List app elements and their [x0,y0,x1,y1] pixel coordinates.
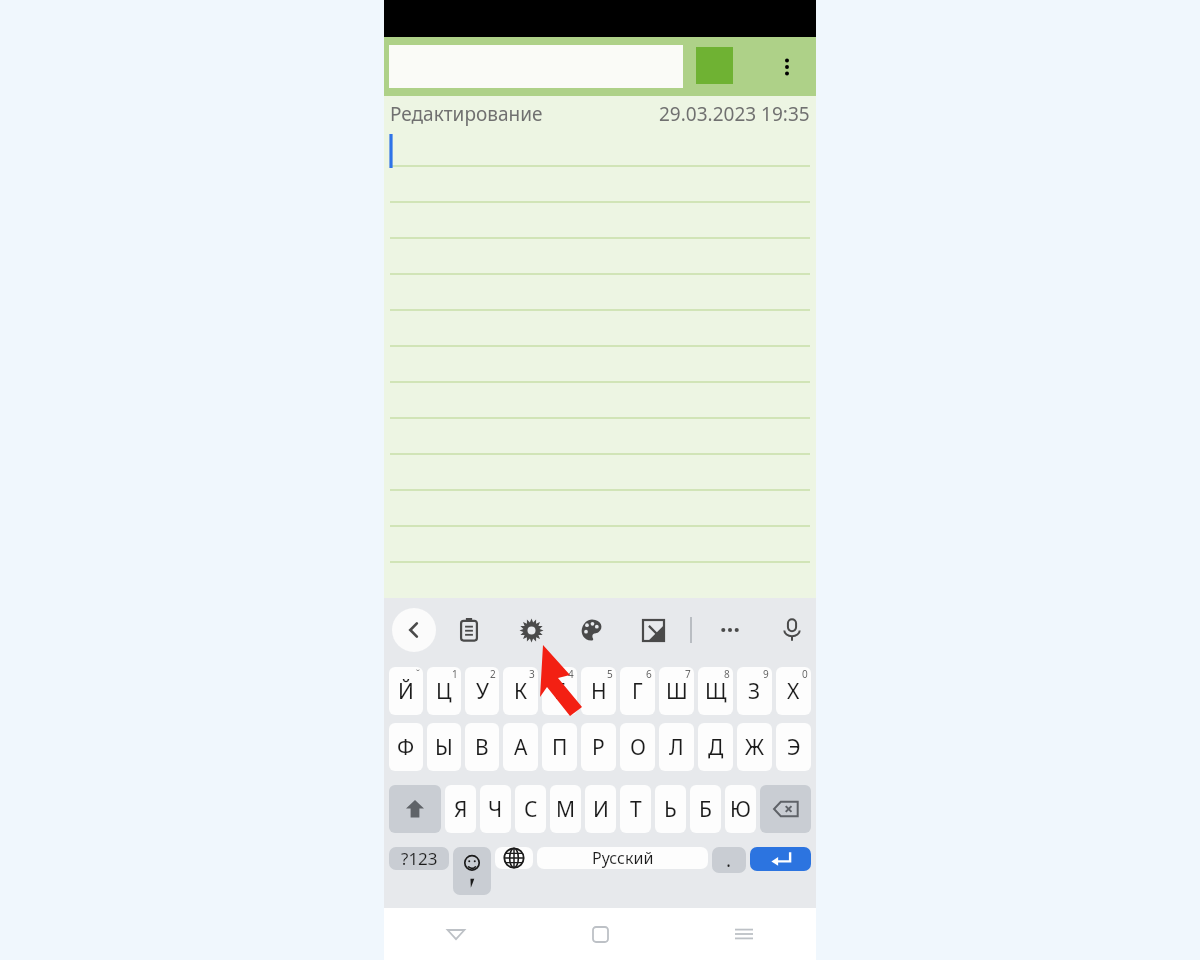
button[interactable]: Темы [570,608,614,652]
staticText: Т [630,795,642,824]
staticText: К [514,677,528,706]
staticText: Русский [592,847,654,869]
staticText: О [630,733,646,762]
staticText: 5 [607,667,613,681]
staticText: 8 [724,667,730,681]
staticText: Р [592,733,605,762]
button[interactable]: Х [776,667,811,715]
staticText: А [514,733,528,762]
button[interactable]: Й [389,667,423,715]
staticText: Ь [664,795,677,824]
button[interactable]: Ь [655,785,686,833]
button[interactable]: Настройки [509,608,553,652]
staticText: 2 [490,667,496,681]
staticText: . [726,847,732,873]
staticText: Э [787,733,801,762]
staticText: Ш [666,677,688,706]
staticText: 4 [568,667,574,681]
button[interactable]: Размер клавиатуры [631,608,675,652]
button[interactable]: Русский [537,847,708,869]
button[interactable]: Ввод [750,847,811,871]
button[interactable]: Д [698,723,733,771]
staticText: Г [632,677,643,706]
button[interactable]: П [542,723,577,771]
button[interactable]: Эмодзи и запятая [453,847,491,895]
button[interactable]: Э [776,723,811,771]
staticText: Х [787,677,800,706]
staticText: И [593,795,609,824]
staticText: 3 [529,667,535,681]
staticText: Л [669,733,684,762]
staticText: Ц [436,677,452,706]
staticText: П [552,733,568,762]
staticText: 1 [452,667,458,681]
staticText: Я [454,795,468,824]
button[interactable]: Б [690,785,721,833]
button[interactable]: Щ [698,667,733,715]
staticText: Ж [745,733,765,762]
button[interactable]: Голосовой ввод [770,608,814,652]
staticText: В [475,733,489,762]
button[interactable]: С [515,785,546,833]
button[interactable]: Ю [725,785,756,833]
button[interactable]: Назад [392,608,436,652]
button[interactable]: Ч [480,785,511,833]
staticText: С [524,795,538,824]
button[interactable]: О [620,723,655,771]
button[interactable]: Н [581,667,616,715]
button[interactable]: ?123 [389,847,449,870]
staticText: У [476,677,489,706]
staticText: ?123 [401,847,438,870]
button[interactable]: А [503,723,538,771]
staticText: ˘ [416,667,420,681]
staticText: Е [554,677,566,706]
button[interactable]: Ж [737,723,772,771]
staticText: Д [708,733,724,762]
button[interactable]: . [712,847,746,873]
button[interactable]: Л [659,723,694,771]
button[interactable]: Ещё [708,608,752,652]
button[interactable]: Г [620,667,655,715]
button[interactable]: Главный экран [528,908,672,960]
staticText: Ф [397,733,415,762]
staticText: Б [699,795,712,824]
button[interactable]: Назад [384,908,528,960]
staticText: Н [591,677,607,706]
button[interactable]: З [737,667,772,715]
button[interactable]: Я [445,785,476,833]
button[interactable]: Shift [389,785,441,833]
button[interactable]: Е [542,667,577,715]
staticText: 9 [763,667,769,681]
button[interactable]: Ф [389,723,423,771]
button[interactable]: Буфер обмена [447,608,491,652]
button[interactable]: У [465,667,499,715]
button[interactable]: Меню [758,37,816,96]
staticText: 7 [685,667,691,681]
staticText: З [748,677,761,706]
staticText: Щ [705,677,727,706]
button[interactable]: Сменить язык [495,847,533,869]
staticText: 29.03.2023 19:35 [659,101,810,127]
button[interactable]: М [550,785,581,833]
button[interactable]: Р [581,723,616,771]
staticText: Ю [730,795,751,824]
staticText: 0 [802,667,808,681]
staticText: Ч [488,795,503,824]
button[interactable]: Последние приложения [672,908,816,960]
button[interactable]: Удалить [760,785,811,833]
staticText: 6 [646,667,652,681]
staticText: Ы [435,733,453,762]
staticText: Й [398,677,414,706]
button[interactable]: Ы [427,723,461,771]
button[interactable]: Т [620,785,651,833]
button[interactable]: К [503,667,538,715]
button[interactable]: Ц [427,667,461,715]
button[interactable]: И [585,785,616,833]
button[interactable]: В [465,723,499,771]
staticText: Редактирование [390,101,543,127]
staticText: М [556,795,576,824]
button[interactable]: Ш [659,667,694,715]
